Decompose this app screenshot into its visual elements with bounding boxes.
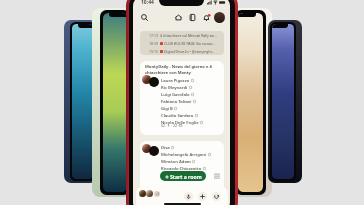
staticText: 22 — [173, 123, 178, 128]
button[interactable]: Reactions — [212, 192, 221, 201]
button[interactable]: Explore — [213, 172, 220, 179]
button[interactable]: MontyDaily - News del giorno e 4 chiacch… — [140, 61, 224, 135]
staticText: Laura Pigozzo — [161, 78, 190, 84]
staticText: Claudio Sardaro — [161, 113, 194, 119]
staticText: 10:44 — [141, 0, 154, 6]
staticText: Fabiano Taliani — [161, 99, 192, 105]
staticText: 62 — [161, 123, 166, 128]
staticText: CLUB HOUSE PAGE Sto nuovo… — [164, 41, 216, 46]
button[interactable]: Disa — [140, 141, 224, 191]
staticText: Gigi B — [161, 106, 173, 112]
button[interactable]: Notifications — [201, 12, 212, 23]
staticText: 17:13 — [149, 33, 158, 38]
staticText: Nicola Delle Foglie — [161, 120, 199, 126]
button[interactable]: Mute microphone — [184, 192, 193, 201]
staticText: Winston Adam — [161, 159, 191, 165]
button[interactable]: Profile — [214, 12, 225, 23]
button[interactable]: People in room — [139, 190, 162, 199]
staticText: 4 chiacchiere sul Mercati Rally an… — [160, 33, 217, 38]
button[interactable]: Search — [139, 12, 150, 23]
staticText: MontyDaily - News del giorno e 4 chiacch… — [145, 64, 213, 76]
staticText: Luigi Garofalo — [161, 92, 190, 98]
staticText: · — [171, 123, 172, 128]
button[interactable]: Start a room — [160, 171, 206, 181]
staticText: +3 — [156, 192, 159, 196]
staticText: Disa — [161, 145, 170, 151]
staticText: Digital Drive-In • @storyinghi… — [164, 49, 215, 54]
staticText: Michelangelo Arrigoni — [161, 152, 207, 158]
button[interactable]: 17:13 — [140, 31, 224, 55]
staticText: 19:15 — [149, 49, 158, 54]
button[interactable]: Home — [173, 12, 184, 23]
staticText: Riccardo Chiozzotto — [161, 166, 202, 172]
button[interactable]: Invite people — [198, 192, 207, 201]
staticText: Ric Meynardi — [161, 85, 188, 91]
button[interactable]: Saved — [187, 12, 198, 23]
staticText: 18:39 — [149, 41, 158, 46]
staticText: Start a room — [170, 173, 202, 180]
